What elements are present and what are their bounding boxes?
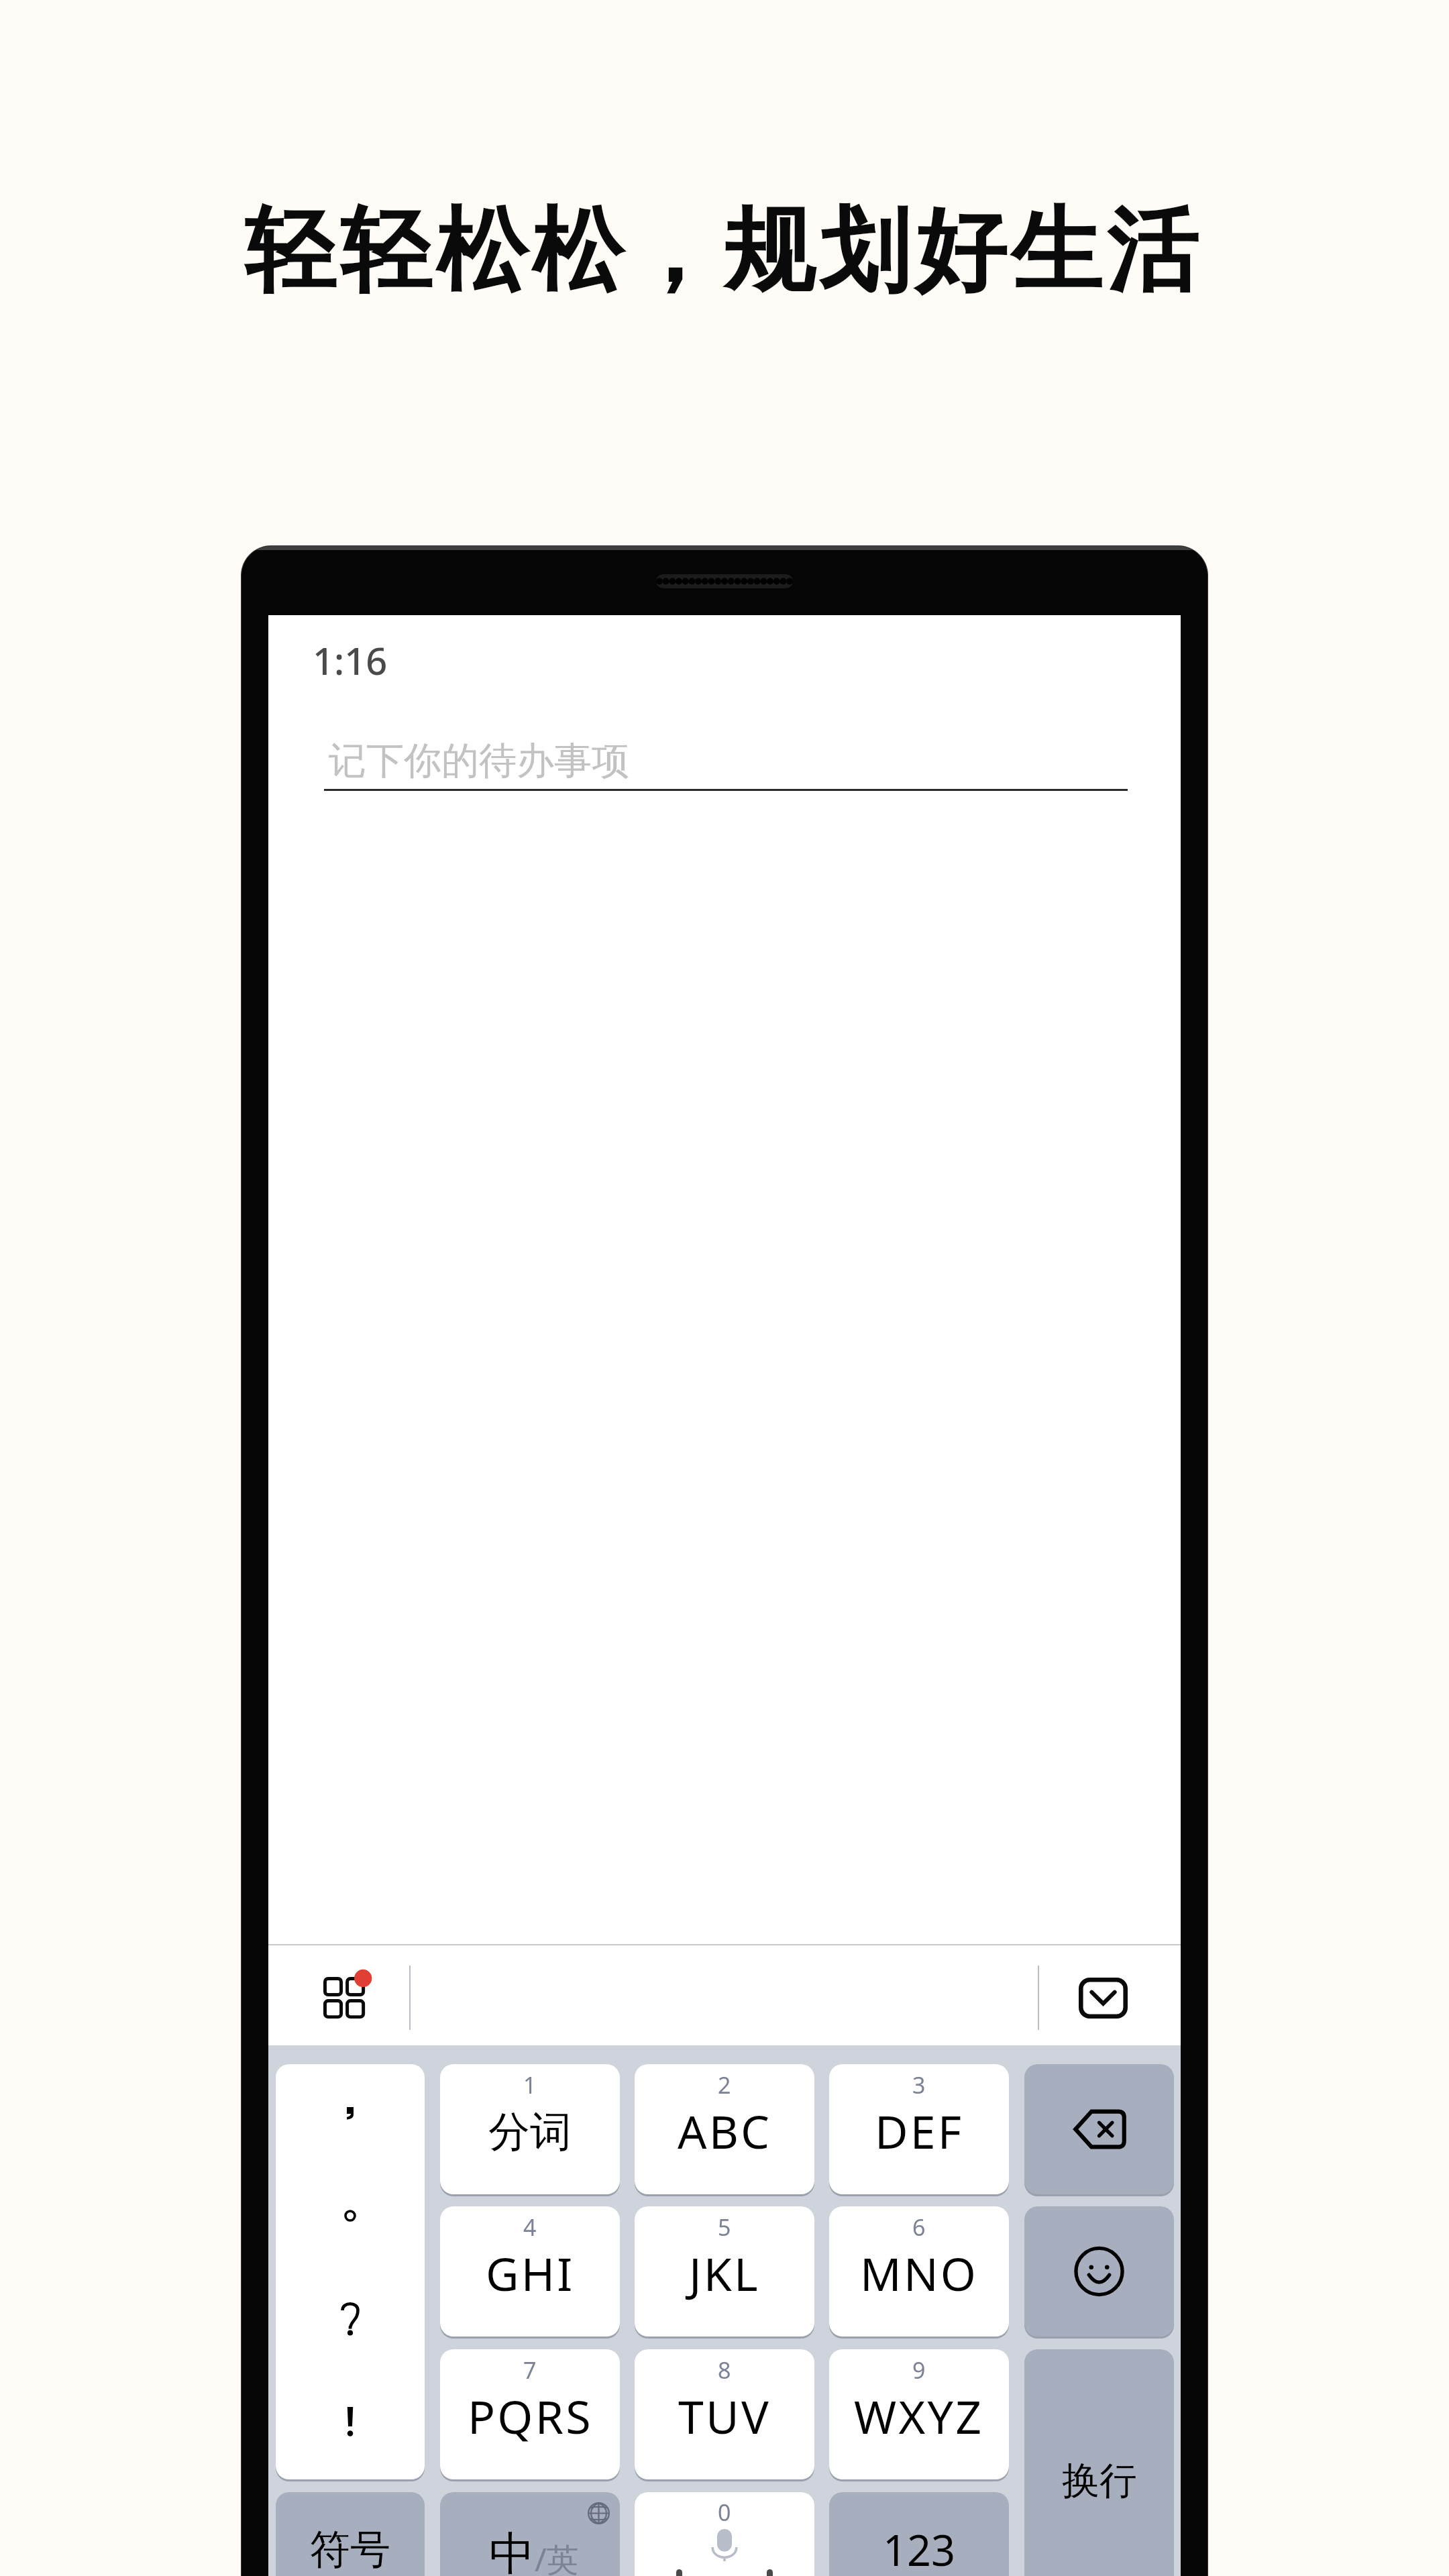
button[interactable]: 符号 <box>276 2492 425 2576</box>
staticText: 1 <box>523 2070 537 2100</box>
button[interactable]: 分词 <box>440 2064 620 2194</box>
staticText: ABC <box>678 2100 772 2162</box>
button[interactable]: Space <box>635 2492 814 2576</box>
button[interactable]: JKL <box>635 2206 814 2337</box>
staticText: PQRS <box>468 2385 593 2447</box>
button[interactable]: Hide keyboard <box>1079 1978 1128 2019</box>
button[interactable]: Emoji <box>1024 2206 1174 2337</box>
staticText: 符号 <box>310 2524 390 2575</box>
staticText: 轻轻松松，规划好生活 <box>242 194 1200 309</box>
button[interactable]: 记下你的待办事项 <box>324 709 1128 791</box>
button[interactable]: ABC <box>635 2064 814 2194</box>
staticText: 3 <box>912 2070 926 2100</box>
staticText: 123 <box>883 2521 956 2576</box>
button[interactable]: Keyboard toolbox <box>303 1955 385 2041</box>
staticText: 4 <box>523 2212 537 2243</box>
button[interactable]: 123 <box>829 2492 1009 2576</box>
staticText: 9 <box>912 2355 926 2385</box>
button[interactable]: 中/英 <box>440 2492 620 2576</box>
button[interactable]: Backspace <box>1024 2064 1174 2194</box>
button[interactable]: PQRS <box>440 2349 620 2479</box>
staticText: DEF <box>875 2100 964 2162</box>
button[interactable]: MNO <box>829 2206 1009 2337</box>
staticText: 5 <box>718 2212 731 2243</box>
staticText: 6 <box>912 2212 926 2243</box>
button[interactable]: DEF <box>829 2064 1009 2194</box>
button[interactable]: 换行 <box>1024 2349 1174 2576</box>
button[interactable]: GHI <box>440 2206 620 2337</box>
staticText: MNO <box>860 2242 979 2304</box>
button[interactable]: WXYZ <box>829 2349 1009 2479</box>
staticText: JKL <box>689 2242 760 2304</box>
staticText: 0 <box>718 2497 731 2528</box>
staticText: 换行 <box>1062 2457 1137 2505</box>
button[interactable]: TUV <box>635 2349 814 2479</box>
staticText: 7 <box>523 2355 537 2385</box>
staticText: 1:16 <box>313 635 388 686</box>
staticText: 记下你的待办事项 <box>329 737 629 785</box>
staticText: WXYZ <box>854 2385 984 2447</box>
staticText: 8 <box>718 2355 731 2385</box>
staticText: TUV <box>678 2385 771 2447</box>
button[interactable]: Punctuation <box>276 2064 425 2479</box>
staticText: 分词 <box>488 2106 572 2158</box>
staticText: 2 <box>718 2070 731 2100</box>
staticText: GHI <box>486 2242 575 2304</box>
staticText: /英 <box>535 2537 579 2576</box>
staticText: 中 <box>489 2526 535 2576</box>
